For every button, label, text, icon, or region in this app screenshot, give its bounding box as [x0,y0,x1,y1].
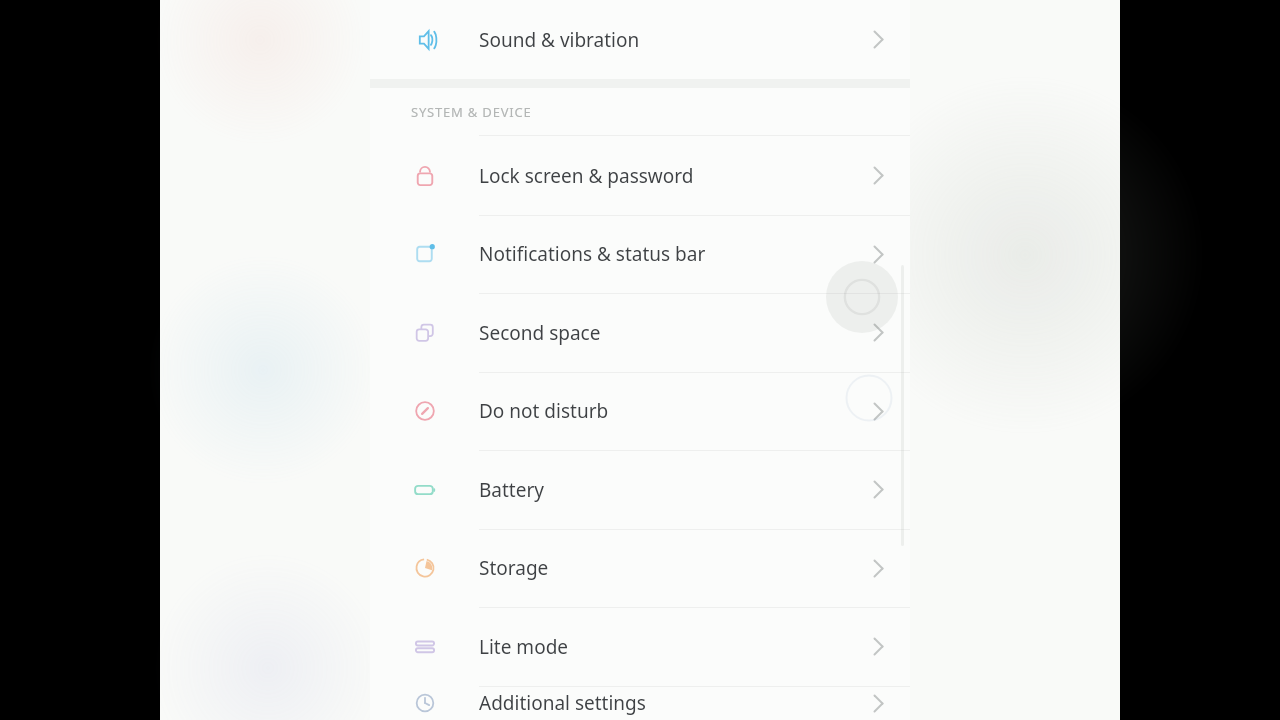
button[interactable]: Additional settings [370,686,910,720]
staticText: SYSTEM & DEVICE [411,103,532,121]
staticText: Additional settings [479,690,846,716]
button[interactable]: Sound & vibration [370,0,910,79]
button[interactable]: Battery [370,450,910,529]
button[interactable]: Second space [370,293,910,372]
button[interactable]: Lite mode [370,607,910,686]
button[interactable]: Notifications & status bar [370,215,910,293]
staticText: Storage [479,555,846,581]
staticText: Second space [479,320,846,346]
button[interactable]: Do not disturb [370,372,910,450]
staticText: Sound & vibration [479,27,846,53]
button[interactable]: Storage [370,529,910,607]
staticText: Notifications & status bar [479,241,846,267]
staticText: Battery [479,477,846,503]
button[interactable]: Lock screen & password [370,136,910,215]
staticText: Lite mode [479,634,846,660]
staticText: Do not disturb [479,398,846,424]
staticText: Lock screen & password [479,163,846,189]
